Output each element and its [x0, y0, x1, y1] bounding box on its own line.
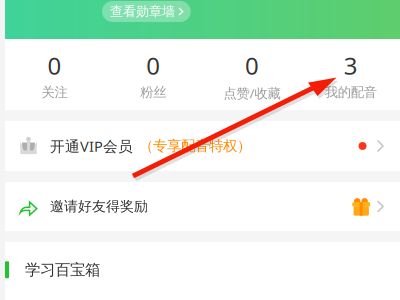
- button[interactable]: 开通VIP会员: [5, 121, 400, 171]
- staticText: 邀请好友得奖励: [50, 198, 148, 215]
- staticText: 0: [245, 49, 259, 82]
- staticText: 粉丝: [140, 84, 166, 101]
- staticText: 学习百宝箱: [25, 260, 100, 279]
- staticText: 关注: [41, 84, 67, 101]
- staticText: 我的配音: [325, 84, 377, 101]
- staticText: 查看勋章墙: [110, 3, 175, 20]
- staticText: （专享配音特权）: [139, 137, 251, 155]
- staticText: 3: [344, 49, 358, 82]
- staticText: 0: [47, 49, 61, 82]
- staticText: 0: [146, 49, 160, 82]
- button[interactable]: 查看勋章墙: [102, 1, 191, 22]
- staticText: 点赞/收藏: [223, 84, 280, 102]
- button[interactable]: 邀请好友得奖励: [5, 182, 400, 231]
- staticText: 开通VIP会员: [50, 136, 133, 156]
